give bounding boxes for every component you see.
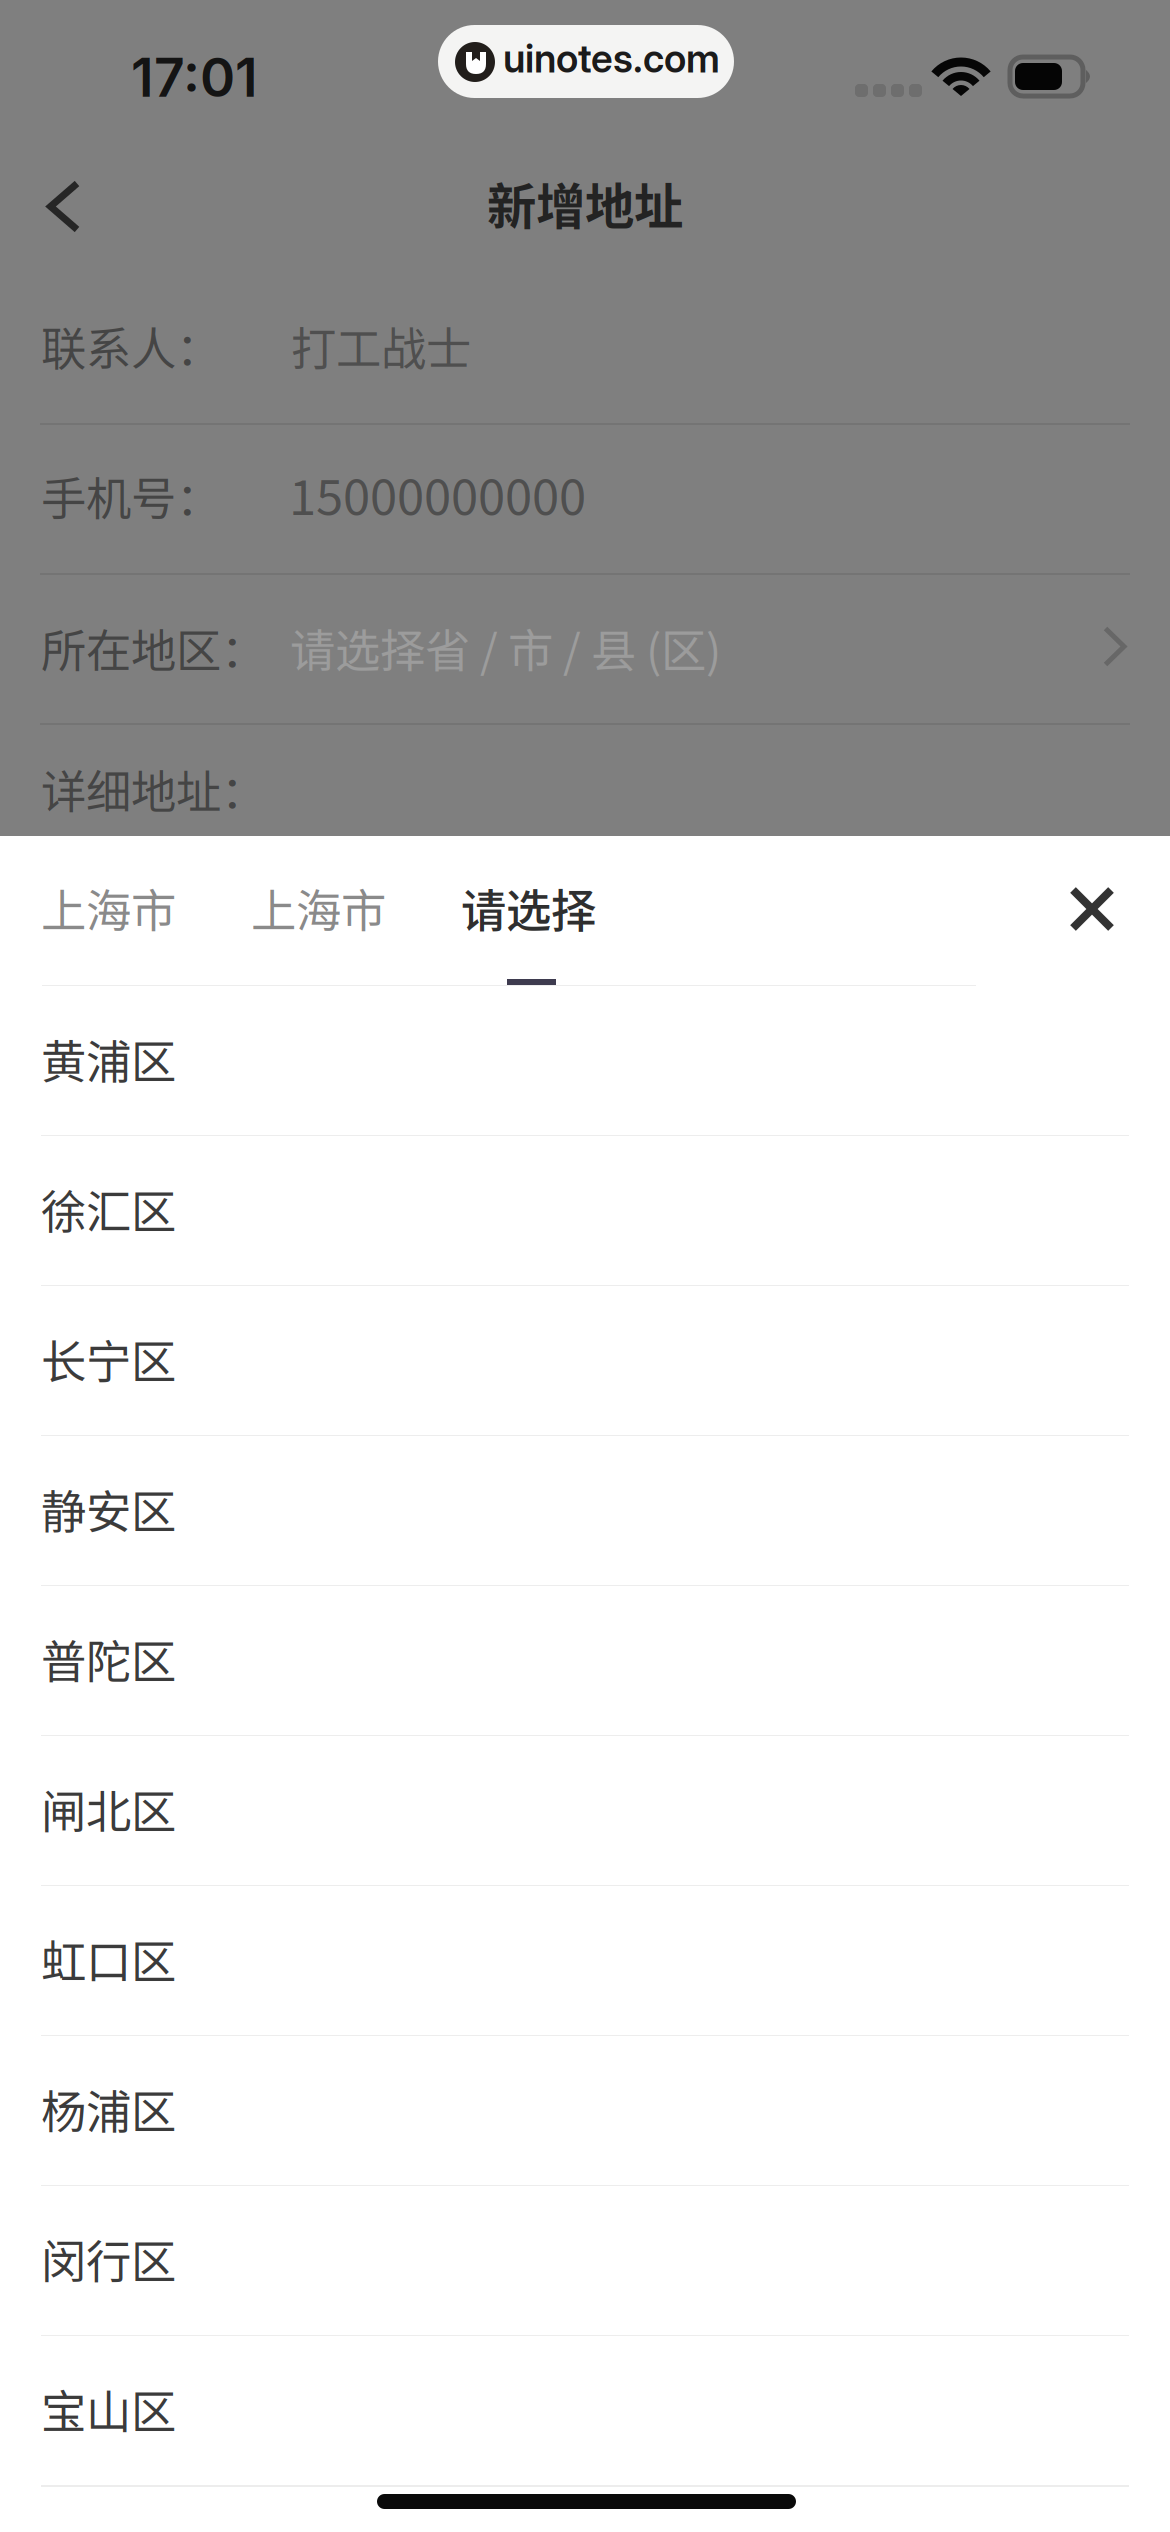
button[interactable]: 上海市 bbox=[251, 863, 431, 953]
staticText: 上海市 bbox=[41, 875, 176, 941]
button[interactable]: 宝山区 bbox=[0, 2336, 1170, 2486]
button[interactable]: Back bbox=[26, 160, 136, 256]
button[interactable]: 杨浦区 bbox=[0, 2036, 1170, 2186]
staticText: 普陀区 bbox=[41, 1626, 176, 1692]
staticText: 闸北区 bbox=[41, 1776, 176, 1842]
staticText: 详细地址： bbox=[41, 756, 266, 822]
button[interactable]: 所在地区： bbox=[0, 575, 1170, 723]
button[interactable]: 闸北区 bbox=[0, 1736, 1170, 1886]
button[interactable]: 静安区 bbox=[0, 1436, 1170, 1586]
staticText: 闵行区 bbox=[41, 2226, 176, 2292]
staticText: 虹口区 bbox=[41, 1926, 176, 1992]
staticText: 15000000000 bbox=[289, 459, 586, 537]
staticText: 静安区 bbox=[41, 1476, 176, 1542]
staticText: 手机号： bbox=[41, 463, 221, 529]
button[interactable]: 黄浦区 bbox=[0, 986, 1170, 1136]
staticText: 打工战士 bbox=[291, 313, 471, 379]
button[interactable]: 上海市 bbox=[41, 863, 221, 953]
button[interactable]: 徐汇区 bbox=[0, 1136, 1170, 1286]
staticText: 新增地址 bbox=[487, 167, 683, 239]
button[interactable]: Close bbox=[1037, 854, 1147, 964]
staticText: 长宁区 bbox=[41, 1326, 176, 1392]
button[interactable]: 长宁区 bbox=[0, 1286, 1170, 1436]
staticText: 17:01 bbox=[131, 45, 258, 109]
staticText: 杨浦区 bbox=[41, 2076, 176, 2142]
staticText: 请选择 bbox=[461, 875, 596, 941]
staticText: 宝山区 bbox=[41, 2376, 176, 2442]
staticText: 请选择省 / 市 / 县 (区) bbox=[290, 615, 721, 681]
staticText: 黄浦区 bbox=[41, 1026, 176, 1092]
button[interactable]: 闵行区 bbox=[0, 2186, 1170, 2336]
staticText: 徐汇区 bbox=[41, 1176, 176, 1242]
button[interactable]: 普陀区 bbox=[0, 1586, 1170, 1736]
button[interactable]: 虹口区 bbox=[0, 1886, 1170, 2036]
staticText: 上海市 bbox=[251, 875, 386, 941]
staticText: uinotes.com bbox=[503, 35, 720, 82]
staticText: 联系人： bbox=[41, 313, 221, 379]
button[interactable]: 请选择 bbox=[461, 863, 641, 953]
staticText: 所在地区： bbox=[41, 615, 266, 681]
